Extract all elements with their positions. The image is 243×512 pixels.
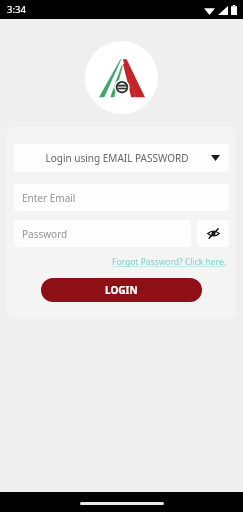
staticText: Password — [22, 227, 68, 241]
staticText: Enter Email — [22, 191, 76, 205]
button[interactable]: Password — [14, 220, 191, 247]
staticText: Login using EMAIL PASSWORD — [23, 151, 211, 165]
button[interactable]: LOGIN — [41, 278, 202, 302]
button[interactable]: Login using EMAIL PASSWORD — [14, 144, 229, 172]
button[interactable]: Show password — [197, 220, 229, 247]
staticText: LOGIN — [105, 283, 138, 297]
button[interactable]: Forgot Password? Click here. — [112, 256, 229, 268]
button[interactable]: Enter Email — [14, 184, 229, 211]
staticText: 3:34 — [7, 3, 26, 16]
